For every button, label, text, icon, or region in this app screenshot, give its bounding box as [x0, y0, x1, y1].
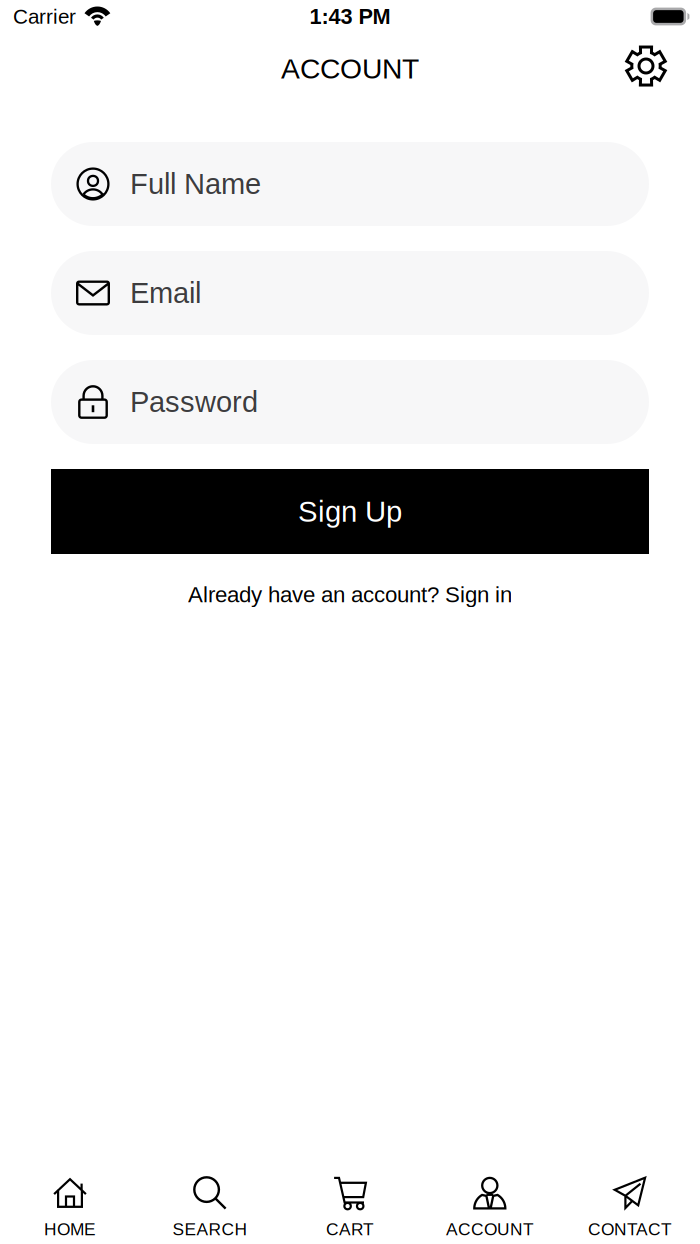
button[interactable]: SEARCH [140, 1174, 280, 1244]
button[interactable]: Password [51, 360, 649, 444]
staticText: Carrier [13, 5, 76, 28]
staticText: Full Name [130, 168, 261, 200]
button[interactable]: Sign Up [51, 469, 649, 554]
staticText: ACCOUNT [281, 53, 419, 85]
staticText: CART [326, 1220, 374, 1239]
staticText: 1:43 PM [309, 4, 390, 29]
staticText: Password [130, 386, 258, 418]
button[interactable]: Settings [621, 41, 671, 91]
button[interactable]: CONTACT [560, 1174, 700, 1244]
button[interactable]: HOME [0, 1174, 140, 1244]
staticText: CONTACT [588, 1220, 672, 1239]
staticText: HOME [44, 1220, 96, 1239]
staticText: Sign Up [298, 495, 402, 528]
button[interactable]: Already have an account? Sign in [188, 572, 512, 617]
button[interactable]: CART [280, 1174, 420, 1244]
button[interactable]: Full Name [51, 142, 649, 226]
staticText: Email [130, 277, 201, 309]
staticText: ACCOUNT [446, 1220, 534, 1239]
staticText: Already have an account? Sign in [188, 582, 512, 607]
staticText: SEARCH [172, 1220, 247, 1239]
button[interactable]: Email [51, 251, 649, 335]
button[interactable]: ACCOUNT [420, 1174, 560, 1244]
